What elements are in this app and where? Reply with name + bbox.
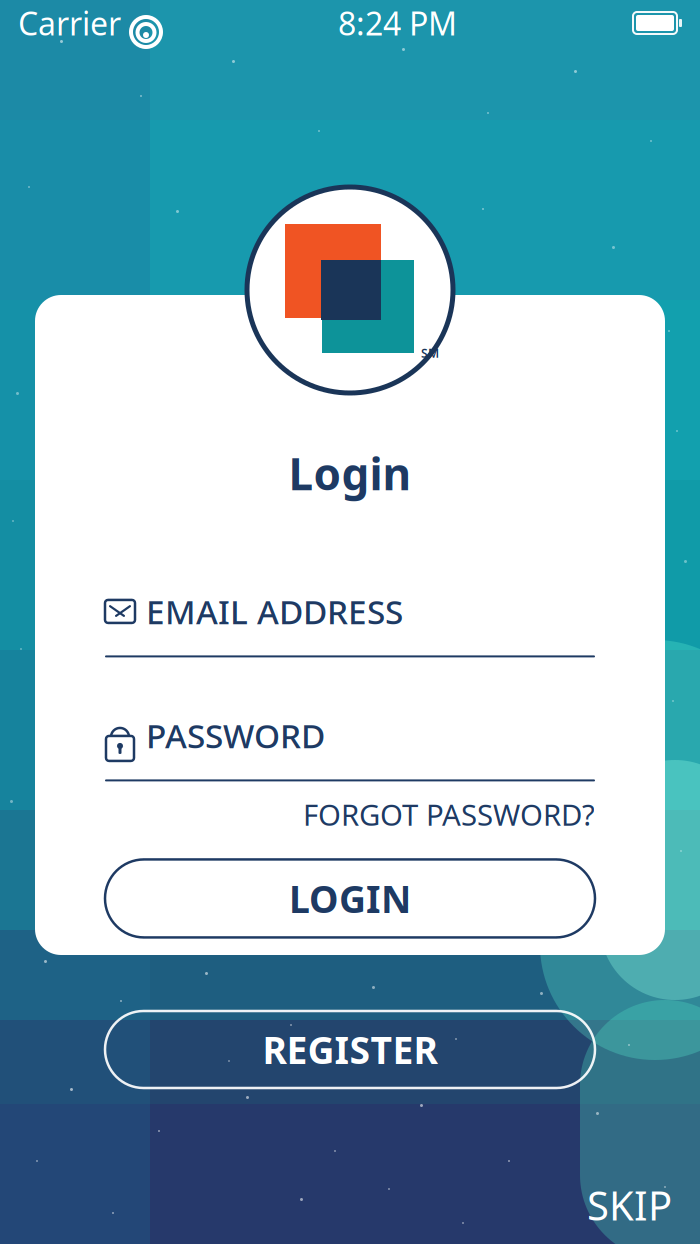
button[interactable]: SKIP xyxy=(562,1182,672,1228)
staticText: REGISTER xyxy=(262,1025,437,1074)
staticText: LOGIN xyxy=(289,874,411,923)
staticText: EMAIL ADDRESS xyxy=(146,589,403,634)
staticText: Login xyxy=(288,444,411,502)
staticText: 8:24 PM xyxy=(338,2,457,44)
staticText: PASSWORD xyxy=(146,713,325,758)
button[interactable]: LOGIN xyxy=(105,859,595,937)
button[interactable]: REGISTER xyxy=(105,1011,595,1088)
button[interactable]: FORGOT PASSWORD? xyxy=(105,797,595,831)
staticText: Carrier xyxy=(18,2,121,44)
staticText: SM xyxy=(421,345,439,361)
staticText: FORGOT PASSWORD? xyxy=(303,795,595,834)
staticText: SKIP xyxy=(587,1178,672,1231)
